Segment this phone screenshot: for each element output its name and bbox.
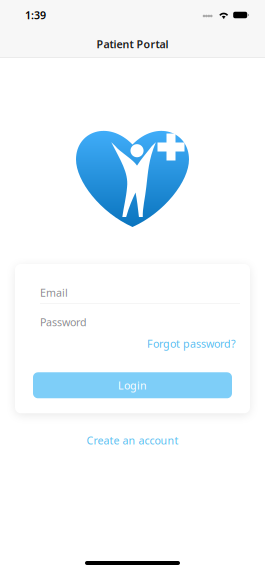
button[interactable]: Forgot password? xyxy=(147,337,236,351)
button[interactable]: Password xyxy=(15,304,250,329)
staticText: 1:39 xyxy=(25,8,46,22)
staticText: Forgot password? xyxy=(147,337,236,351)
button[interactable]: Create an account xyxy=(80,430,184,450)
staticText: Password xyxy=(40,315,87,329)
staticText: Login xyxy=(118,378,147,392)
button[interactable]: Email xyxy=(15,264,250,303)
button[interactable]: Login xyxy=(33,372,232,398)
staticText: Email xyxy=(40,285,68,300)
staticText: Create an account xyxy=(86,433,178,447)
staticText: Patient Portal xyxy=(96,37,168,51)
